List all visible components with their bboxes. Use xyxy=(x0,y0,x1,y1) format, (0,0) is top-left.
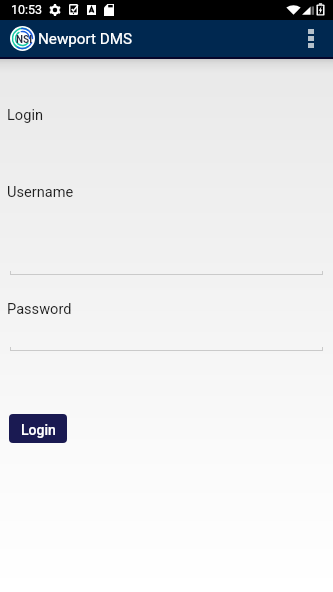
button[interactable]: More options xyxy=(294,20,328,57)
staticText: Username xyxy=(7,183,74,200)
button[interactable]: Login xyxy=(9,414,67,443)
staticText: Login xyxy=(7,106,43,123)
staticText: Newport DMS xyxy=(38,30,132,48)
staticText: Login xyxy=(21,422,56,438)
staticText: 10:53 xyxy=(11,2,43,17)
staticText: NSI xyxy=(16,34,33,46)
staticText: Password xyxy=(7,300,72,317)
